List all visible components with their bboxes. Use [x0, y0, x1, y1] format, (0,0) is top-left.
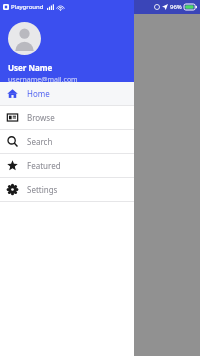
staticText: User Name — [8, 62, 53, 73]
staticText: swipe here --> — [6, 197, 59, 208]
button[interactable]: Browse — [0, 106, 134, 129]
staticText: 96% — [170, 3, 182, 11]
staticText: Settings — [27, 184, 58, 195]
button[interactable]: Home — [0, 82, 134, 105]
staticText: Featured — [27, 160, 61, 171]
button[interactable]: Search — [0, 130, 134, 153]
button[interactable]: Featured — [0, 154, 134, 177]
button[interactable]: Settings — [0, 178, 134, 201]
staticText: Browse — [27, 112, 55, 123]
staticText: Search — [27, 136, 53, 147]
staticText: username@mail.com — [8, 75, 78, 82]
button[interactable]: User Name — [0, 14, 134, 82]
staticText: Home — [27, 88, 50, 99]
staticText: Playground — [11, 3, 44, 11]
